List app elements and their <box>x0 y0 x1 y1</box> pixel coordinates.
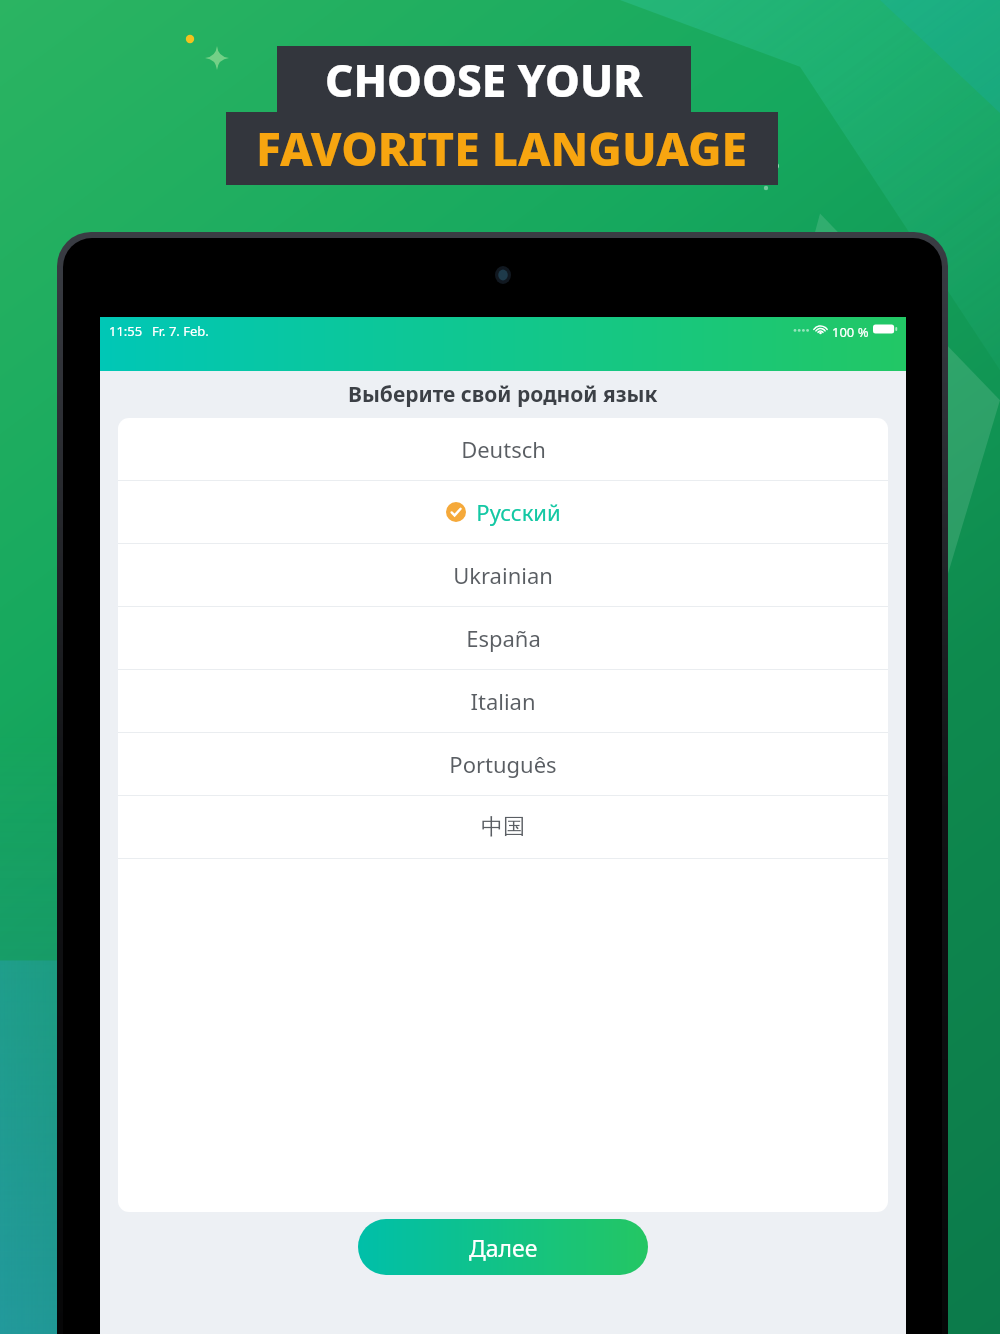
staticText: Deutsch <box>461 434 546 464</box>
staticText: Далее <box>469 1232 538 1263</box>
staticText: FAVORITE LANGUAGE <box>256 117 748 180</box>
other: Wi-Fi <box>813 323 828 335</box>
button[interactable]: Português <box>118 733 888 795</box>
button[interactable]: Ukrainian <box>118 544 888 606</box>
button[interactable]: Далее <box>358 1219 648 1275</box>
staticText: España <box>466 623 541 653</box>
staticText: Fr. 7. Feb. <box>152 322 209 340</box>
staticText: CHOOSE YOUR <box>325 50 643 110</box>
button[interactable]: Русский <box>118 481 888 543</box>
other: Battery <box>873 323 897 335</box>
staticText: Выберите свой родной язык <box>348 380 658 409</box>
staticText: Ukrainian <box>453 560 553 590</box>
other: Signal <box>793 323 809 335</box>
staticText: 中国 <box>481 813 525 841</box>
button[interactable]: Italian <box>118 670 888 732</box>
staticText: 11:55 <box>109 322 143 340</box>
staticText: 100 % <box>832 323 869 341</box>
staticText: Русский <box>476 497 561 527</box>
button[interactable]: España <box>118 607 888 669</box>
button[interactable]: 中国 <box>118 796 888 858</box>
button[interactable]: Deutsch <box>118 418 888 480</box>
staticText: Português <box>449 749 557 779</box>
staticText: Italian <box>470 686 536 716</box>
